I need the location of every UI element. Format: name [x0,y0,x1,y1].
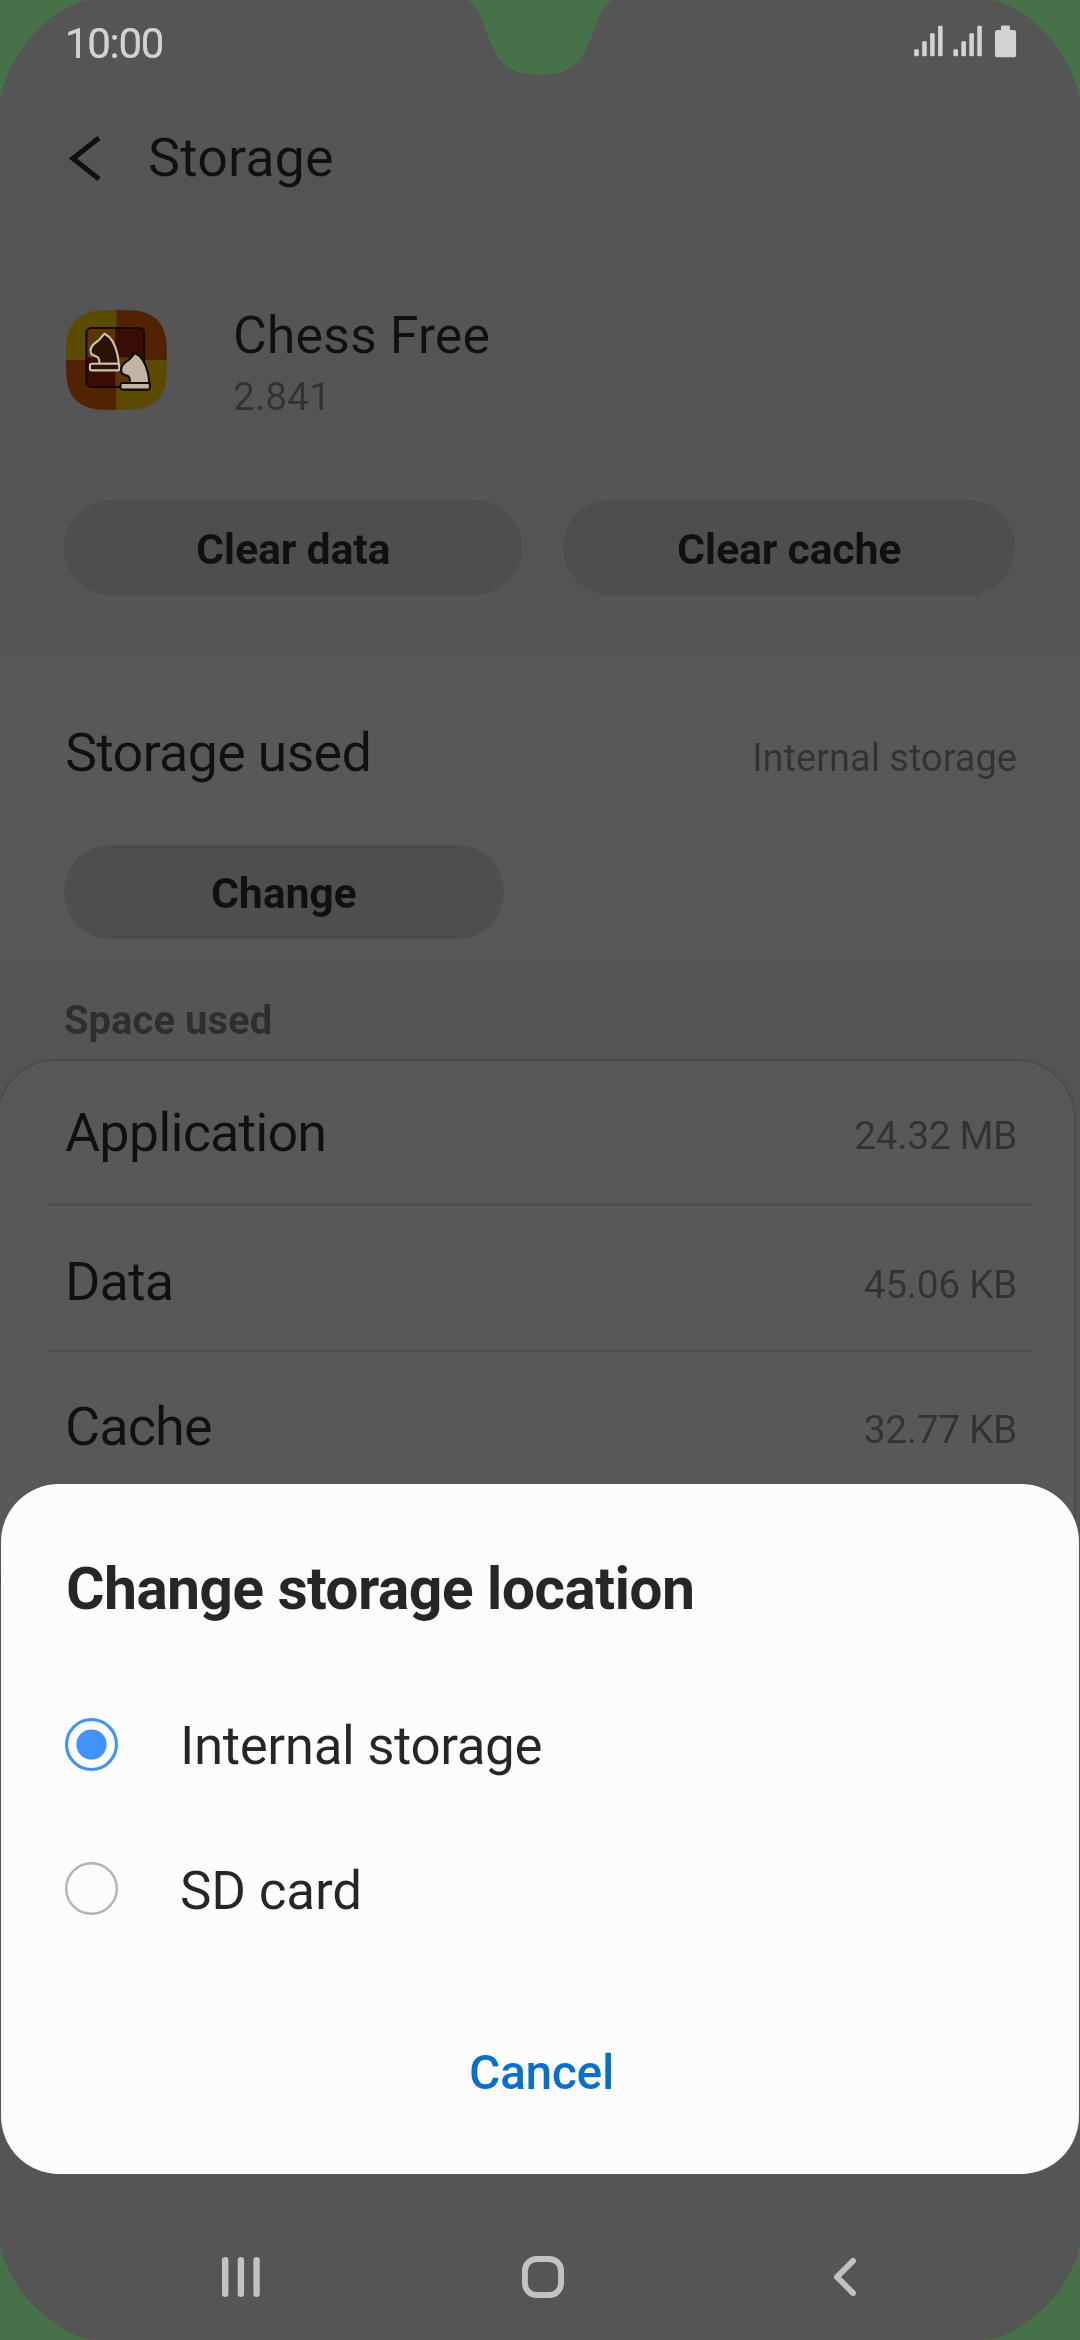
staticText: SD card [180,1860,362,1922]
staticText: Clear cache [677,524,902,574]
button[interactable]: Internal storage [1,1684,1079,1804]
staticText: Internal storage [600,736,1017,781]
staticText: 32.77 KB [600,1407,1017,1453]
staticText: Clear data [196,524,391,574]
staticText: 10:00 [65,19,164,68]
button[interactable]: SD card [1,1828,1079,1948]
staticText: Space used [64,997,273,1044]
button[interactable]: Back [785,2227,905,2327]
staticText: Data [65,1250,174,1313]
staticText: Application [65,1101,327,1164]
button[interactable]: Navigate up [36,108,136,208]
staticText: 2.841 [233,374,331,420]
button[interactable]: Clear data [64,500,522,595]
staticText: Change [211,868,357,918]
button[interactable]: Cancel [401,2016,681,2128]
staticText: Cache [65,1395,212,1458]
staticText: 24.32 MB [600,1113,1017,1159]
staticText: Storage used [65,721,372,784]
staticText: Storage [148,126,334,189]
staticText: Chess Free [233,305,491,366]
button[interactable]: Recent apps [181,2227,301,2327]
staticText: Change storage location [66,1554,695,1623]
button[interactable]: Home [483,2227,603,2327]
staticText: Internal storage [180,1715,543,1777]
button[interactable]: Change [64,845,504,939]
button[interactable]: Clear cache [563,500,1015,595]
staticText: Cancel [469,2044,614,2100]
staticText: 45.06 KB [600,1262,1017,1308]
